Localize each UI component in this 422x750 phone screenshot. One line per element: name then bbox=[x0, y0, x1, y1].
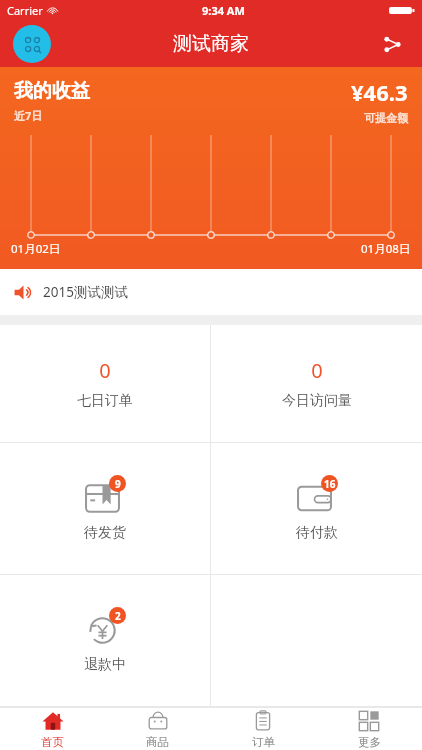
button[interactable]: 2015测试测试 bbox=[0, 269, 422, 315]
staticText: 2 bbox=[115, 609, 121, 623]
button[interactable]: 0 bbox=[211, 325, 422, 442]
staticText: ¥46.3 bbox=[351, 77, 408, 107]
staticText: 9:34 AM bbox=[202, 3, 245, 18]
button[interactable]: Share bbox=[372, 24, 412, 64]
button[interactable]: Profile bbox=[13, 25, 51, 63]
staticText: 七日订单 bbox=[77, 392, 133, 410]
button[interactable]: 首页 bbox=[0, 708, 105, 750]
staticText: 2015测试测试 bbox=[43, 283, 128, 301]
button[interactable]: 9 bbox=[0, 443, 210, 574]
button[interactable]: 2 bbox=[0, 575, 210, 706]
staticText: 近7日 bbox=[14, 108, 43, 123]
staticText: 我的收益 bbox=[14, 79, 90, 103]
staticText: 今日访问量 bbox=[282, 392, 352, 410]
staticText: 16 bbox=[324, 477, 336, 491]
staticText: 订单 bbox=[252, 735, 275, 749]
staticText: 9 bbox=[115, 477, 121, 491]
staticText: 测试商家 bbox=[173, 32, 249, 56]
staticText: 可提金额 bbox=[364, 111, 408, 125]
staticText: 01月08日 bbox=[361, 241, 411, 257]
staticText: 01月02日 bbox=[11, 241, 61, 257]
staticText: 商品 bbox=[146, 735, 169, 749]
button[interactable]: 更多 bbox=[316, 708, 422, 750]
staticText: 更多 bbox=[358, 735, 381, 749]
staticText: 待发货 bbox=[84, 524, 126, 542]
button[interactable]: 商品 bbox=[105, 708, 210, 750]
staticText: 0 bbox=[99, 357, 111, 384]
button[interactable]: 订单 bbox=[210, 708, 316, 750]
staticText: 待付款 bbox=[296, 524, 338, 542]
staticText: 0 bbox=[311, 357, 323, 384]
staticText: Carrier bbox=[7, 3, 43, 18]
button[interactable]: 0 bbox=[0, 325, 210, 442]
button[interactable]: 16 bbox=[211, 443, 422, 574]
staticText: 首页 bbox=[41, 735, 64, 749]
staticText: 退款中 bbox=[84, 656, 126, 674]
